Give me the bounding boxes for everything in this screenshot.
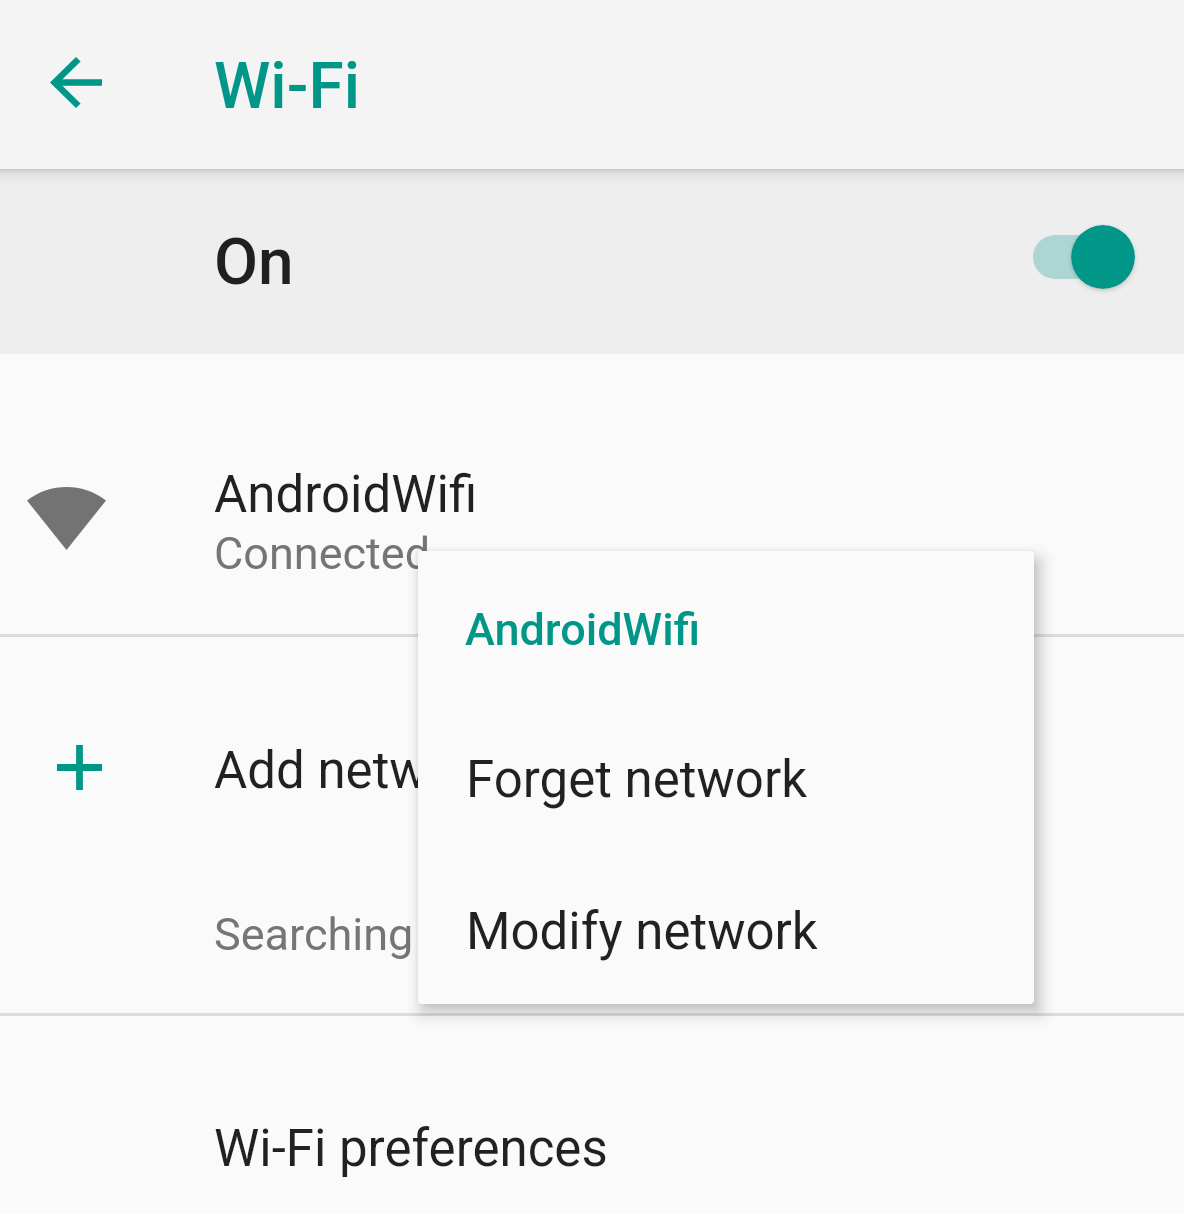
button[interactable]: On [0,169,1184,354]
staticText: Modify network [466,902,818,962]
staticText: On [214,225,294,300]
staticText: Connected [214,527,431,580]
staticText: Searching [214,908,414,961]
button[interactable]: Wi-Fi preferences [0,1016,1184,1214]
button[interactable]: Forget network [418,696,1034,836]
button[interactable]: Modify network [418,836,1034,976]
staticText: AndroidWifi [214,465,478,525]
staticText: Forget network [466,750,808,810]
staticText: Wi-Fi preferences [214,1119,608,1179]
button[interactable]: AndroidWifi [418,591,1034,696]
staticText: AndroidWifi [465,603,700,656]
button[interactable]: Wi-Fi on [1021,207,1147,307]
staticText: Wi-Fi [214,49,360,124]
button[interactable]: Add network [0,637,1184,827]
button[interactable]: AndroidWifi [0,354,1184,635]
button[interactable]: Back [28,34,124,130]
staticText: Add network [214,741,500,801]
